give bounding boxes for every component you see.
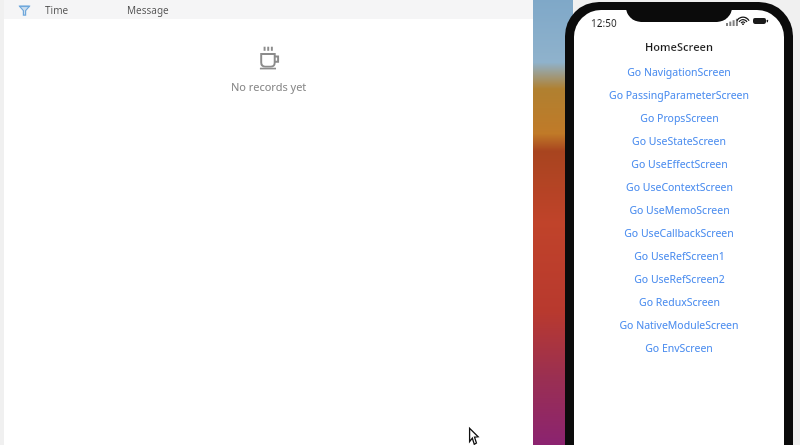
staticText: 12:50: [591, 16, 617, 30]
staticText: Message: [127, 3, 169, 17]
staticText: HomeScreen: [574, 39, 784, 54]
button[interactable]: Go UseContextScreen: [574, 179, 784, 195]
staticText: Go PropsScreen: [640, 111, 719, 125]
staticText: No records yet: [231, 79, 307, 94]
button[interactable]: Go UseRefScreen1: [574, 248, 784, 264]
button[interactable]: Go PassingParameterScreen: [574, 87, 784, 103]
staticText: Go UseCallbackScreen: [624, 226, 734, 240]
staticText: Go UseContextScreen: [626, 180, 733, 194]
staticText: Go UseMemoScreen: [629, 203, 730, 217]
staticText: Go NavigationScreen: [627, 65, 731, 79]
button[interactable]: Go NavigationScreen: [574, 64, 784, 80]
button[interactable]: Go UseEffectScreen: [574, 156, 784, 172]
staticText: Go EnvScreen: [645, 341, 713, 355]
button[interactable]: Go UseStateScreen: [574, 133, 784, 149]
button[interactable]: Filter: [17, 3, 31, 17]
button[interactable]: Go UseRefScreen2: [574, 271, 784, 287]
staticText: Go NativeModuleScreen: [619, 318, 739, 332]
staticText: Go UseStateScreen: [632, 134, 726, 148]
button[interactable]: Go UseCallbackScreen: [574, 225, 784, 241]
staticText: Go PassingParameterScreen: [609, 88, 749, 102]
button[interactable]: Time: [45, 3, 127, 17]
button[interactable]: Message: [127, 3, 169, 17]
staticText: Go UseRefScreen1: [634, 249, 725, 263]
button[interactable]: Go ReduxScreen: [574, 294, 784, 310]
button[interactable]: Go PropsScreen: [574, 110, 784, 126]
staticText: Go ReduxScreen: [639, 295, 720, 309]
button[interactable]: Go UseMemoScreen: [574, 202, 784, 218]
staticText: Time: [45, 3, 69, 17]
button[interactable]: Go EnvScreen: [574, 340, 784, 356]
staticText: Go UseRefScreen2: [634, 272, 725, 286]
button[interactable]: Go NativeModuleScreen: [574, 317, 784, 333]
staticText: Go UseEffectScreen: [631, 157, 728, 171]
